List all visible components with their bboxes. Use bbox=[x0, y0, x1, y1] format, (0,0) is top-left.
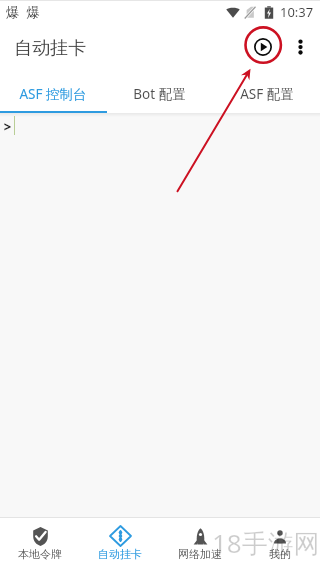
button[interactable]: 本地令牌 bbox=[0, 518, 80, 568]
button[interactable]: 自动挂卡 bbox=[80, 518, 160, 568]
staticText: 自动挂卡 bbox=[14, 37, 86, 60]
staticText: 我的 bbox=[269, 547, 291, 561]
button[interactable]: Start bbox=[244, 28, 282, 66]
button[interactable]: Bot 配置 bbox=[106, 72, 213, 111]
button[interactable]: 网络加速 bbox=[160, 518, 240, 568]
staticText: ASF 配置 bbox=[240, 85, 294, 103]
staticText: 10:37 bbox=[280, 3, 314, 21]
staticText: 本地令牌 bbox=[18, 547, 62, 561]
button[interactable]: ASF 控制台 bbox=[0, 72, 106, 111]
staticText: > bbox=[3, 116, 13, 136]
staticText: 自动挂卡 bbox=[98, 547, 142, 561]
staticText: 爆 爆 bbox=[6, 3, 41, 21]
button[interactable]: More options bbox=[281, 24, 320, 72]
staticText: ASF 控制台 bbox=[19, 85, 87, 103]
button[interactable]: ASF 配置 bbox=[213, 72, 320, 111]
staticText: 网络加速 bbox=[178, 547, 222, 561]
button[interactable]: 我的 bbox=[240, 518, 320, 568]
staticText: Bot 配置 bbox=[133, 85, 186, 103]
staticText: 18手游网 bbox=[212, 525, 320, 561]
